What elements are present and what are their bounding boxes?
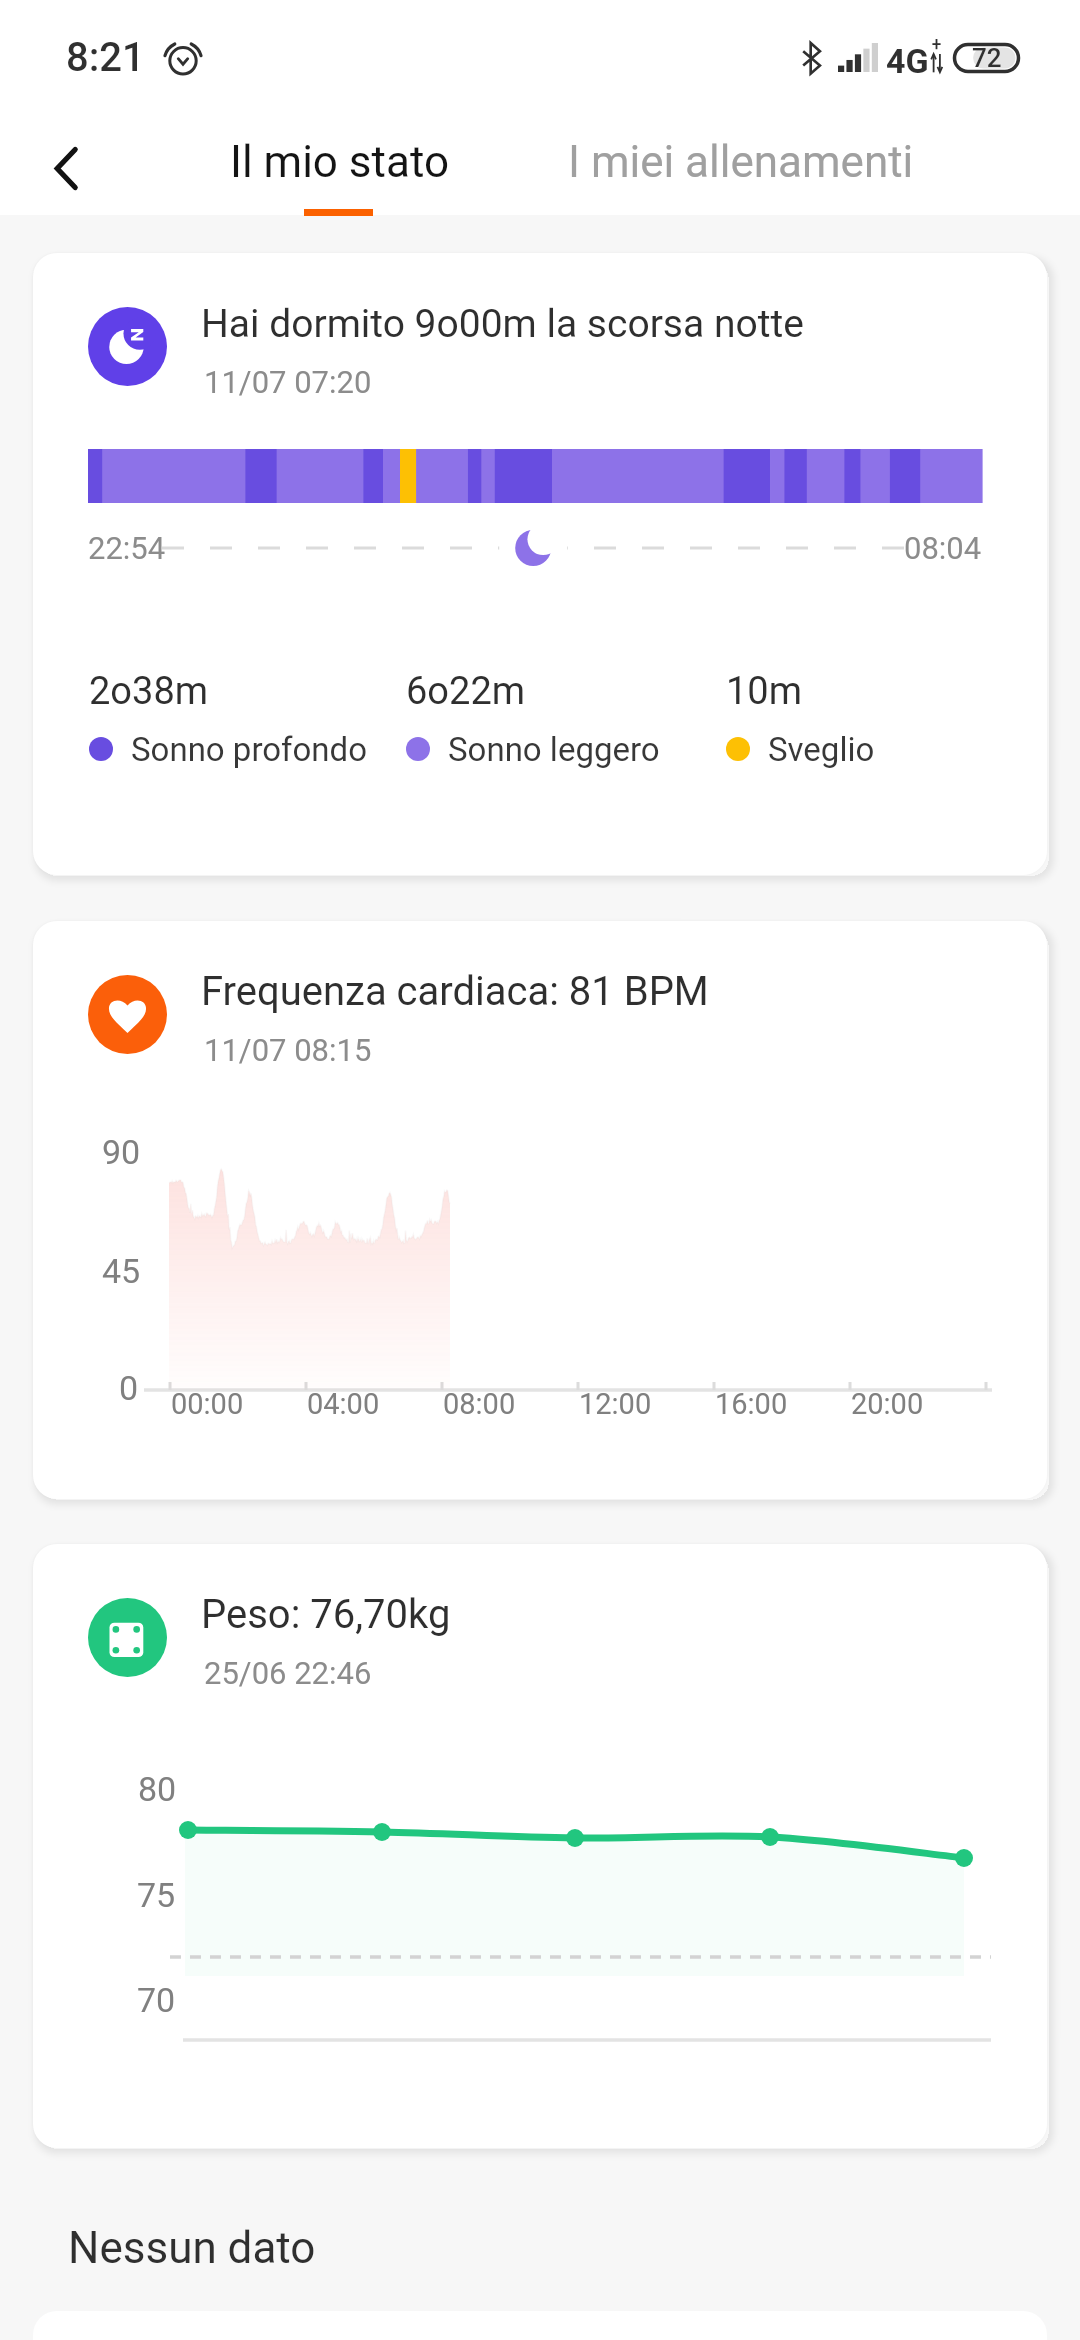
staticText: 00:00 — [171, 1387, 244, 1421]
staticText: 12:00 — [579, 1387, 652, 1421]
staticText: 25/06 22:46 — [204, 1655, 372, 1691]
button[interactable]: Il mio stato — [219, 108, 459, 216]
staticText: 72 — [972, 43, 1002, 73]
staticText: 04:00 — [307, 1387, 380, 1421]
staticText: 2o38m — [89, 669, 209, 714]
staticText: 16:00 — [715, 1387, 788, 1421]
staticText: Sveglio — [768, 730, 875, 769]
staticText: 70 — [137, 1980, 176, 2020]
staticText: Peso: 76,70kg — [201, 1591, 451, 1638]
button[interactable]: Frequenza cardiaca: 81 BPM — [33, 921, 1047, 1499]
staticText: 80 — [138, 1769, 177, 1809]
staticText: Sonno leggero — [448, 730, 660, 769]
button[interactable]: Back — [13, 113, 119, 219]
staticText: Sonno profondo — [131, 730, 368, 769]
button[interactable]: Hai dormito 9o00m la scorsa notte — [33, 253, 1047, 875]
staticText: Frequenza cardiaca: 81 BPM — [201, 968, 709, 1015]
staticText: Hai dormito 9o00m la scorsa notte — [201, 301, 804, 347]
button[interactable]: Peso: 76,70kg — [33, 1544, 1047, 2148]
staticText: 11/07 07:20 — [204, 364, 372, 400]
staticText: 10m — [726, 669, 803, 714]
staticText: 22:54 — [88, 530, 166, 566]
staticText: 4G — [886, 41, 929, 81]
staticText: 6o22m — [406, 669, 526, 714]
staticText: 75 — [137, 1875, 176, 1915]
staticText: 8:21 — [66, 34, 145, 81]
staticText: 11/07 08:15 — [204, 1032, 372, 1068]
staticText: I miei allenamenti — [568, 136, 914, 188]
staticText: 45 — [102, 1251, 141, 1291]
staticText: 20:00 — [851, 1387, 924, 1421]
staticText: Nessun dato — [68, 2222, 316, 2274]
staticText: Il mio stato — [230, 136, 449, 188]
staticText: 0 — [119, 1368, 139, 1408]
staticText: 90 — [102, 1132, 141, 1172]
staticText: 08:04 — [904, 530, 982, 566]
staticText: 08:00 — [443, 1387, 516, 1421]
button[interactable]: I miei allenamenti — [561, 108, 921, 216]
